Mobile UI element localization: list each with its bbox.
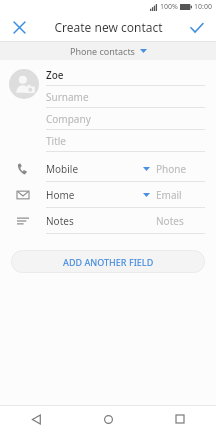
- staticText: Zoe: [46, 68, 64, 82]
- button[interactable]: Notes: [0, 208, 216, 234]
- staticText: Mobile: [46, 162, 79, 176]
- staticText: Create new contact: [54, 19, 163, 35]
- button[interactable]: Title: [46, 130, 205, 152]
- staticText: Home: [46, 188, 75, 202]
- staticText: 10:00: [194, 2, 212, 12]
- button[interactable]: Email: [0, 182, 216, 208]
- staticText: Company: [46, 112, 91, 126]
- button[interactable]: Phone contacts: [64, 43, 153, 59]
- button[interactable]: Recent apps: [144, 406, 216, 432]
- button[interactable]: Phone: [0, 156, 216, 182]
- button[interactable]: Home: [72, 406, 144, 432]
- button[interactable]: Add contact photo: [9, 69, 39, 99]
- staticText: ADD ANOTHER FIELD: [63, 256, 154, 268]
- staticText: Surname: [46, 90, 89, 104]
- staticText: Email: [156, 188, 182, 202]
- staticText: Notes: [156, 214, 184, 228]
- button[interactable]: Save contact: [186, 16, 208, 38]
- staticText: Notes: [46, 214, 74, 228]
- button[interactable]: Zoe: [46, 64, 205, 86]
- button[interactable]: Back: [0, 406, 72, 432]
- staticText: 100%: [160, 2, 178, 12]
- button[interactable]: ADD ANOTHER FIELD: [11, 250, 205, 273]
- staticText: Title: [46, 134, 66, 148]
- staticText: Phone contacts: [70, 45, 135, 57]
- staticText: Phone: [156, 162, 187, 176]
- button[interactable]: Company: [46, 108, 205, 130]
- button[interactable]: Surname: [46, 86, 205, 108]
- button[interactable]: Close: [8, 16, 30, 38]
